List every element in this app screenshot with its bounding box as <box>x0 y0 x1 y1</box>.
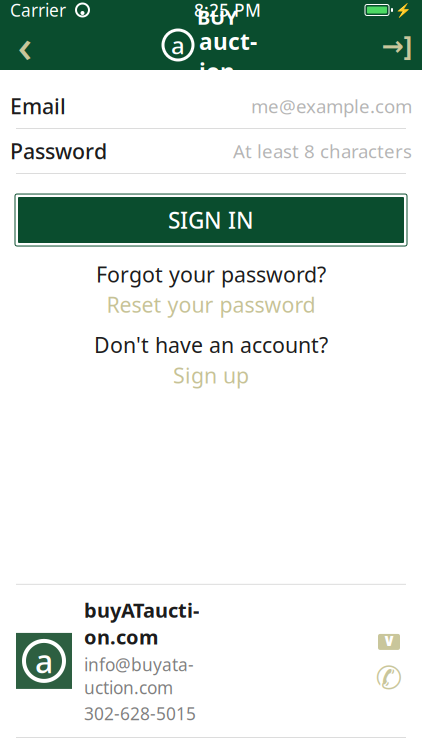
staticText <box>66 0 71 21</box>
staticText: Don't have an account? <box>94 331 328 359</box>
staticText: ✆ <box>375 660 402 696</box>
staticText: ⚡ <box>395 2 412 18</box>
staticText: a <box>171 29 185 61</box>
staticText: a <box>35 640 53 682</box>
button[interactable]: Call us <box>376 666 402 690</box>
staticText: Forgot your password? <box>96 260 326 288</box>
staticText: Password <box>10 137 107 165</box>
staticText: 8:25 PM <box>194 0 261 21</box>
staticText: 302-628-5015 <box>84 702 196 725</box>
staticText: auction <box>199 26 257 86</box>
button[interactable]: Sign in <box>372 20 422 70</box>
staticText: Email <box>10 92 66 120</box>
staticText: →] <box>381 27 412 63</box>
staticText: At least 8 characters <box>233 139 412 163</box>
staticText: buyATauction.com <box>84 597 199 650</box>
staticText: SIGN IN <box>168 205 254 235</box>
button[interactable]: Email us <box>376 632 402 652</box>
staticText: me@example.com <box>251 94 412 118</box>
staticText: ‹ <box>17 15 32 75</box>
button[interactable]: Sign up <box>173 361 249 389</box>
button[interactable]: Reset your password <box>106 290 315 319</box>
button[interactable]: SIGN IN <box>15 194 407 246</box>
button[interactable]: Back <box>0 20 50 70</box>
staticText: BUY <box>197 4 238 30</box>
staticText: Reset your password <box>106 290 315 319</box>
staticText: Carrier <box>10 0 66 21</box>
staticText: Sign up <box>173 361 249 389</box>
staticText: info@buyatauction.com <box>84 653 194 699</box>
staticText: ∨ <box>382 630 396 650</box>
